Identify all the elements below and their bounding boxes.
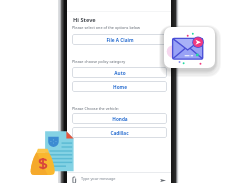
button[interactable]: Home xyxy=(72,81,167,92)
staticText: Cadillac xyxy=(110,130,129,136)
button[interactable]: Auto xyxy=(72,67,167,78)
staticText: File A Claim xyxy=(106,37,134,43)
staticText: Type your message xyxy=(81,176,116,181)
button[interactable]: Type your message xyxy=(67,173,171,183)
staticText: Auto xyxy=(114,70,126,76)
staticText: Please select one of the options below xyxy=(72,25,141,30)
staticText: Hi Steve xyxy=(73,16,96,24)
button[interactable]: New message xyxy=(164,27,215,68)
other: Send xyxy=(160,179,166,182)
staticText: Please choose policy category xyxy=(72,59,126,64)
staticText: Home xyxy=(113,84,127,90)
staticText: Honda xyxy=(112,116,128,122)
staticText: Please Choose the vehicle: xyxy=(72,106,119,111)
button[interactable]: Cadillac xyxy=(72,127,167,138)
button[interactable]: File A Claim xyxy=(72,34,167,45)
button[interactable]: Honda xyxy=(72,113,167,124)
